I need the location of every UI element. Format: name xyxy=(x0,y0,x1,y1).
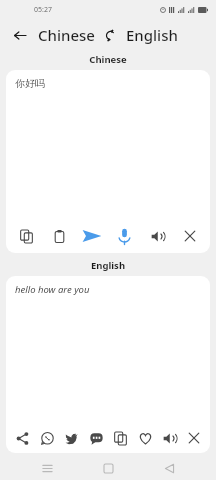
button[interactable]: Paste xyxy=(45,222,73,250)
button[interactable]: Copy xyxy=(108,426,132,450)
staticText: Chinese xyxy=(0,53,216,66)
button[interactable]: Clear xyxy=(176,222,204,250)
button[interactable]: Copy xyxy=(12,222,40,250)
staticText: hello how are you xyxy=(15,283,90,296)
staticText: English xyxy=(0,259,216,272)
button[interactable]: Favorite xyxy=(133,426,157,450)
button[interactable]: Speak xyxy=(157,426,181,450)
button[interactable]: Home xyxy=(94,456,122,480)
button[interactable]: Twitter xyxy=(59,426,83,450)
button[interactable]: Back xyxy=(155,456,183,480)
button[interactable]: Share xyxy=(10,426,34,450)
button[interactable]: Close xyxy=(182,426,206,450)
staticText: 05:27 xyxy=(34,5,52,15)
button[interactable]: Voice input xyxy=(110,222,138,250)
button[interactable]: WhatsApp xyxy=(35,426,59,450)
staticText: 你好吗 xyxy=(15,77,45,90)
button[interactable]: Back xyxy=(8,24,30,46)
button[interactable]: Recents xyxy=(33,456,61,480)
button[interactable]: Translate xyxy=(78,222,106,250)
button[interactable]: Swap languages xyxy=(102,27,119,44)
button[interactable]: English xyxy=(126,25,178,45)
button[interactable]: Chinese xyxy=(38,25,95,45)
button[interactable]: Speak xyxy=(143,222,171,250)
button[interactable]: SMS xyxy=(84,426,108,450)
